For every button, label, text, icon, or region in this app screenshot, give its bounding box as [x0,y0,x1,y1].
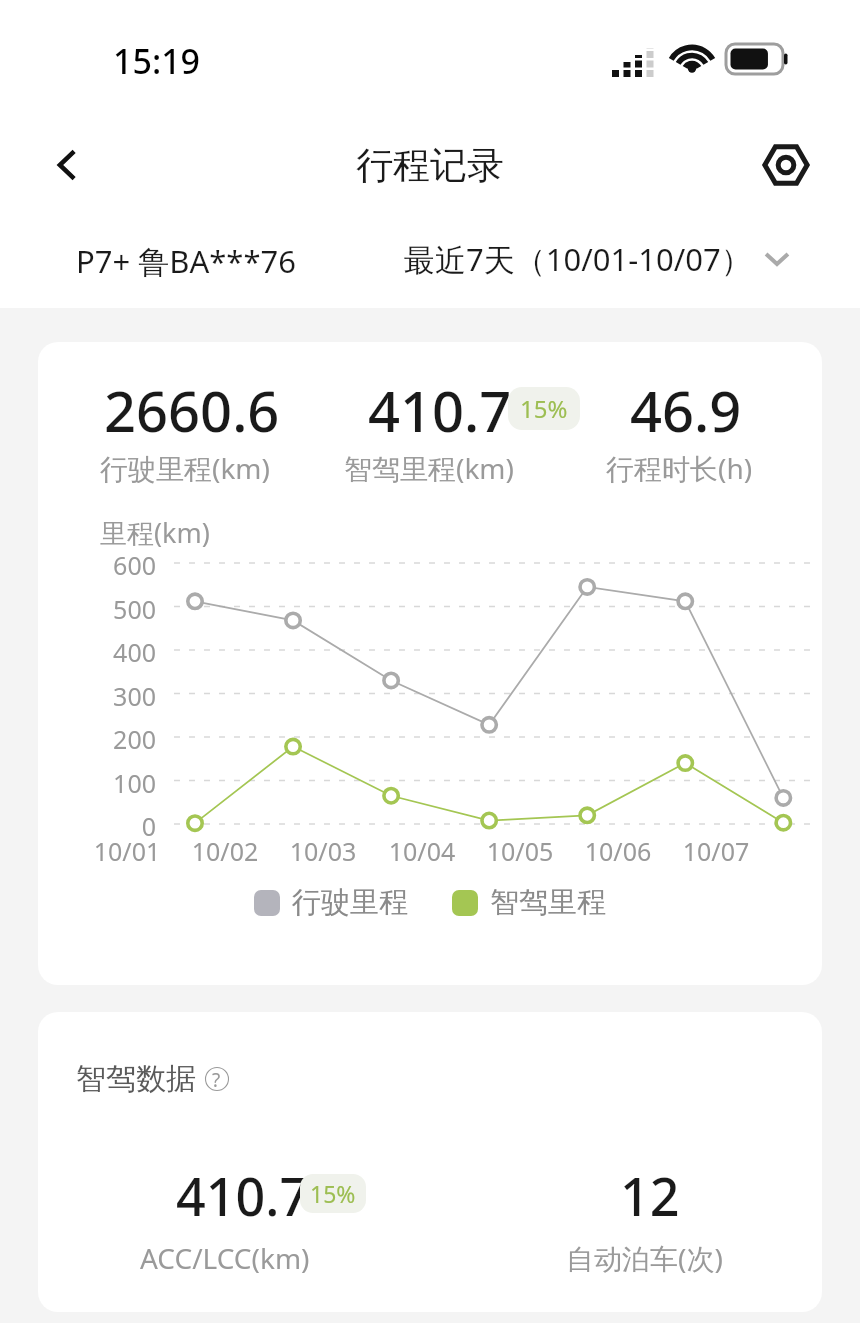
staticText: 10/01 [79,834,175,868]
staticText: 智驾数据 [76,1060,196,1098]
staticText: 行程记录 [0,142,860,189]
staticText: 400 [100,635,156,669]
button[interactable]: Settings [748,127,824,203]
staticText: 200 [100,722,156,756]
staticText: 行驶里程(km) [100,449,270,487]
staticText: 10/02 [177,834,273,868]
staticText: 500 [100,592,156,626]
staticText: 行驶里程 [292,884,408,921]
staticText: 10/04 [374,834,470,868]
staticText: 里程(km) [100,514,210,551]
staticText: 10/06 [570,834,666,868]
staticText: 15% [310,1178,356,1209]
staticText: 12 [620,1160,680,1231]
staticText: 410.7 [176,1160,310,1231]
staticText: 100 [100,766,156,800]
staticText: 10/05 [472,834,568,868]
button[interactable]: 智驾数据 [76,1060,239,1098]
staticText: 46.9 [630,372,742,448]
staticText: 行程时长(h) [606,449,753,487]
staticText: 15:19 [113,38,201,84]
staticText: 最近7天（10/01-10/07） [404,238,752,280]
staticText: 自动泊车(次) [566,1239,723,1277]
staticText: 0 [100,809,156,843]
button[interactable]: Back [30,127,106,203]
staticText: 2660.6 [104,372,280,448]
staticText: 15% [520,392,568,425]
staticText: 智驾里程 [490,884,606,921]
staticText: 300 [100,679,156,713]
staticText: 410.7 [368,372,512,448]
staticText: 600 [100,548,156,582]
staticText: 10/07 [668,834,764,868]
staticText: 10/03 [275,834,371,868]
button[interactable]: 最近7天（10/01-10/07） [404,238,790,280]
staticText: ACC/LCC(km) [140,1239,310,1277]
button[interactable]: P7+ 鲁BA***76 [76,240,296,282]
staticText: 智驾里程(km) [344,449,514,487]
staticText: ? [212,1067,221,1093]
